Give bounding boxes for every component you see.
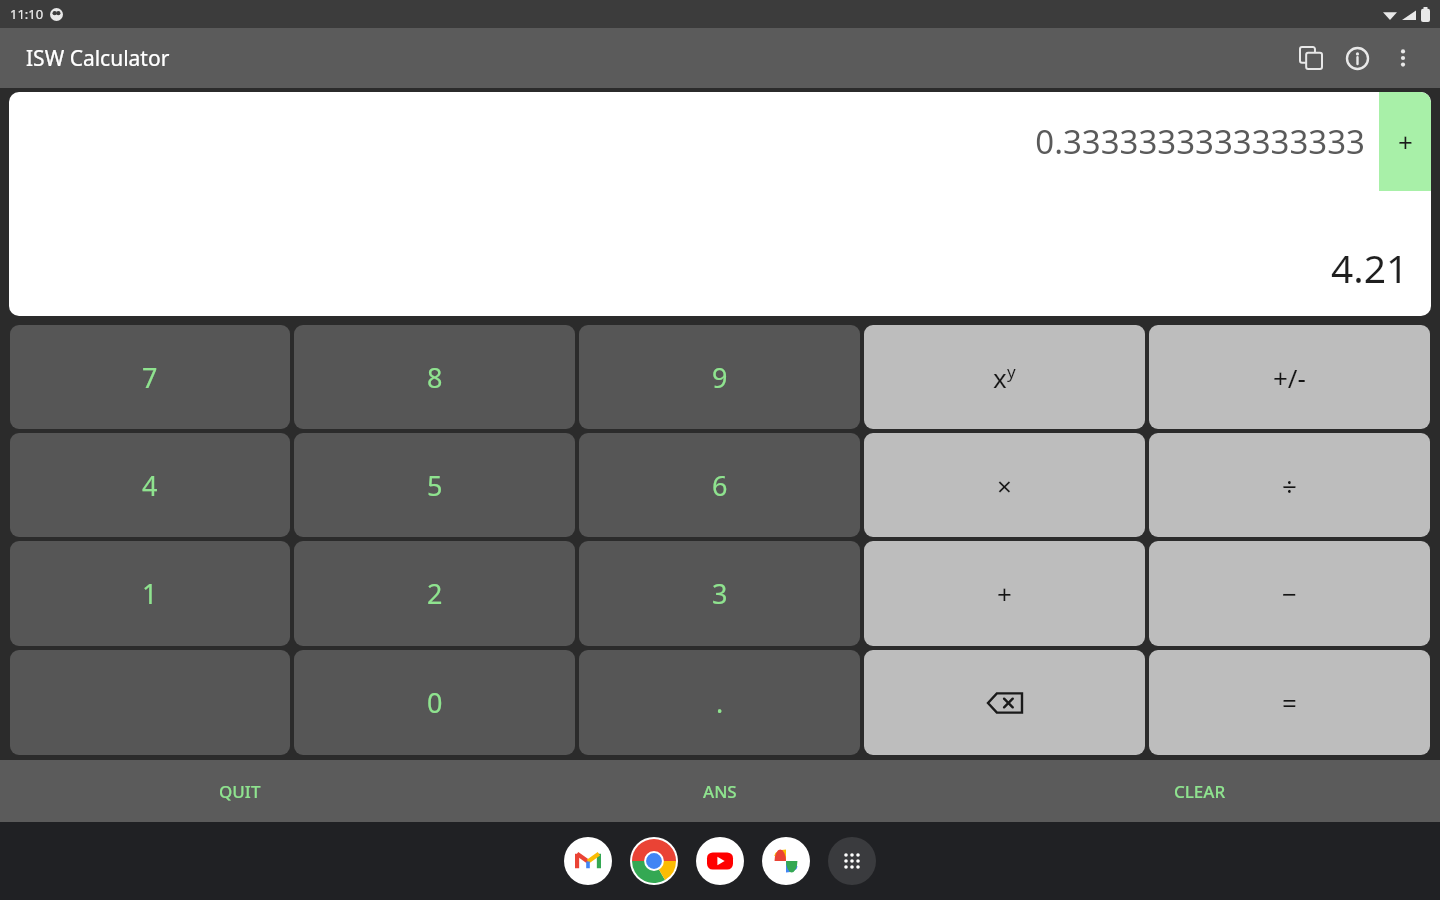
staticText: 7 bbox=[142, 359, 158, 396]
staticText: + bbox=[997, 576, 1012, 611]
button[interactable]: 6 bbox=[579, 433, 860, 537]
button[interactable]: 9 bbox=[579, 325, 860, 429]
staticText: CLEAR bbox=[1174, 780, 1226, 803]
button[interactable]: + bbox=[864, 541, 1145, 646]
staticText: 2 bbox=[427, 575, 443, 612]
staticText: 6 bbox=[712, 467, 728, 504]
staticText: 1 bbox=[142, 575, 158, 612]
staticText: × bbox=[997, 468, 1012, 503]
staticText: 0.3333333333333333 bbox=[9, 119, 1365, 164]
staticText: ISW Calculator bbox=[26, 44, 170, 73]
button[interactable]: 0.3333333333333333 bbox=[9, 92, 1431, 316]
button[interactable]: 1 bbox=[10, 541, 290, 646]
button[interactable]: +/- bbox=[1149, 325, 1430, 429]
button[interactable]: 8 bbox=[294, 325, 575, 429]
button[interactable]: 7 bbox=[10, 325, 290, 429]
button[interactable]: YouTube bbox=[696, 837, 744, 885]
button[interactable]: + bbox=[1379, 92, 1431, 191]
staticText: 9 bbox=[712, 359, 728, 396]
button[interactable]: More options bbox=[1380, 35, 1426, 81]
staticText: QUIT bbox=[219, 780, 261, 803]
staticText: + bbox=[1398, 124, 1413, 159]
staticText: x bbox=[993, 360, 1007, 395]
button[interactable]: 0 bbox=[294, 650, 575, 755]
staticText: 8 bbox=[427, 359, 443, 396]
button[interactable]: Copy bbox=[1288, 35, 1334, 81]
button[interactable]: 2 bbox=[294, 541, 575, 646]
staticText: 0 bbox=[427, 684, 443, 721]
button[interactable]: CLEAR bbox=[960, 760, 1440, 822]
button[interactable]: ÷ bbox=[1149, 433, 1430, 537]
button[interactable]: Chrome bbox=[630, 837, 678, 885]
button[interactable]: 5 bbox=[294, 433, 575, 537]
button[interactable]: 3 bbox=[579, 541, 860, 646]
button[interactable]: QUIT bbox=[0, 760, 480, 822]
button[interactable]: 4 bbox=[10, 433, 290, 537]
button[interactable]: All apps bbox=[828, 837, 876, 885]
button[interactable]: ANS bbox=[480, 760, 960, 822]
button[interactable]: Backspace bbox=[864, 650, 1145, 755]
button[interactable]: Info bbox=[1334, 35, 1380, 81]
staticText: 5 bbox=[427, 467, 443, 504]
staticText: 3 bbox=[712, 575, 728, 612]
staticText: ANS bbox=[703, 780, 737, 803]
button[interactable]: × bbox=[864, 433, 1145, 537]
staticText: 4 bbox=[142, 467, 158, 504]
staticText: 11:10 bbox=[10, 5, 44, 23]
button[interactable]: . bbox=[579, 650, 860, 755]
button[interactable]: x bbox=[864, 325, 1145, 429]
button[interactable]: Gmail bbox=[564, 837, 612, 885]
staticText: y bbox=[1007, 360, 1016, 383]
staticText: +/- bbox=[1273, 360, 1306, 395]
staticText: . bbox=[716, 684, 724, 721]
button[interactable]: = bbox=[1149, 650, 1430, 755]
staticText: 4.21 bbox=[1331, 241, 1409, 294]
staticText: = bbox=[1282, 685, 1297, 720]
button[interactable]: Photos bbox=[762, 837, 810, 885]
staticText: ÷ bbox=[1282, 468, 1297, 503]
button[interactable]: − bbox=[1149, 541, 1430, 646]
staticText: − bbox=[1282, 576, 1297, 611]
